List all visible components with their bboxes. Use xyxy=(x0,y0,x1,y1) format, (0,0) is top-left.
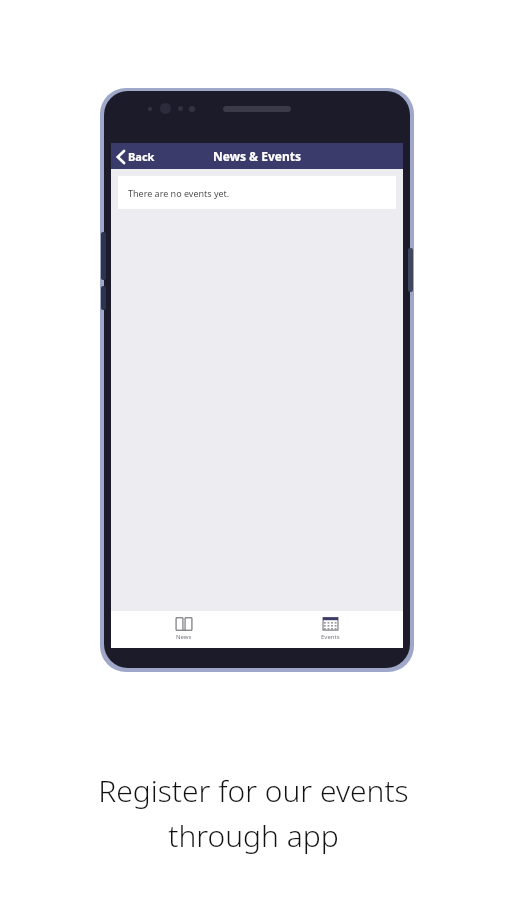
button[interactable]: News xyxy=(111,611,257,648)
staticText: There are no events yet. xyxy=(128,187,230,199)
staticText: News xyxy=(176,633,192,641)
button[interactable]: There are no events yet. xyxy=(118,176,396,209)
button[interactable]: Events xyxy=(257,611,403,648)
staticText: Register for our events xyxy=(98,770,409,811)
staticText: Events xyxy=(321,633,340,641)
staticText: News & Events xyxy=(213,148,301,164)
button[interactable]: Back xyxy=(111,145,163,168)
staticText: Back xyxy=(128,149,155,164)
staticText: through app xyxy=(168,815,339,856)
